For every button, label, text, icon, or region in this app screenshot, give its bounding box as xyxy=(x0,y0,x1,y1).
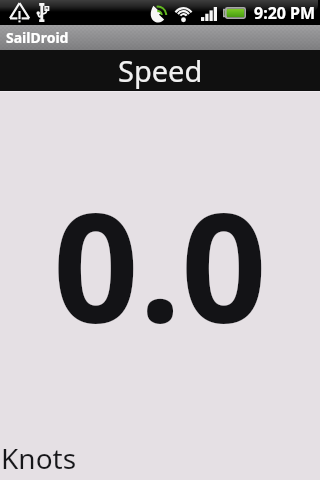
button[interactable]: 0.0 xyxy=(0,92,320,480)
button[interactable]: Speed xyxy=(0,50,320,91)
other: Wi-Fi xyxy=(173,5,194,21)
other: Ringer on xyxy=(149,3,170,23)
staticText: 9:20 PM xyxy=(254,2,316,24)
other: USB connected xyxy=(37,3,49,22)
button[interactable]: SailDroid xyxy=(0,25,320,50)
staticText: Speed xyxy=(118,51,203,90)
staticText: Knots xyxy=(1,439,77,477)
staticText: SailDroid xyxy=(6,28,69,47)
staticText: 0.0 xyxy=(0,162,320,366)
other: Battery xyxy=(223,7,246,19)
other: Alert xyxy=(10,2,30,22)
